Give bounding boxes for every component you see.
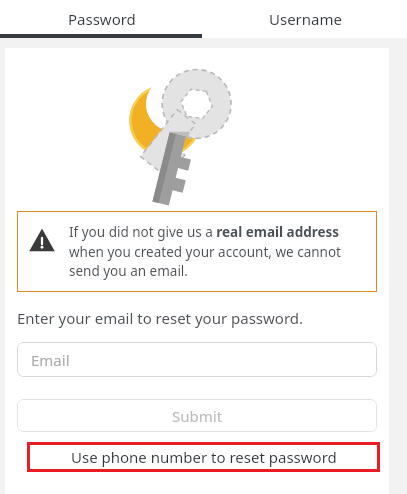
staticText: Password xyxy=(68,9,136,29)
button[interactable]: Use phone number to reset password xyxy=(27,442,380,472)
button[interactable]: Email xyxy=(17,342,377,377)
button[interactable]: Password xyxy=(0,0,203,38)
button[interactable]: Username xyxy=(203,0,407,38)
button[interactable]: Submit xyxy=(17,399,377,432)
staticText: If you did not give us a real email addr… xyxy=(69,223,365,280)
staticText: Username xyxy=(269,9,342,29)
staticText: Use phone number to reset password xyxy=(71,447,337,467)
staticText: Submit xyxy=(172,406,223,426)
staticText: Enter your email to reset your password. xyxy=(17,308,304,328)
staticText: Email xyxy=(31,350,70,370)
